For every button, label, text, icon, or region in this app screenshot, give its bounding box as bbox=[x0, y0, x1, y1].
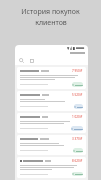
button[interactable]: Фильтр bbox=[28, 57, 35, 64]
button[interactable]: 8 620 ₽ bbox=[17, 157, 86, 178]
button[interactable]: 1 020 ₽ bbox=[17, 113, 86, 133]
button[interactable]: Действие bbox=[74, 104, 83, 109]
button[interactable]: Действие bbox=[72, 82, 83, 87]
button[interactable]: Действие bbox=[72, 172, 83, 176]
button[interactable]: Действие bbox=[73, 148, 83, 153]
button[interactable]: 7 950 ₽ bbox=[17, 67, 86, 89]
staticText: История покупок bbox=[21, 7, 80, 17]
button[interactable]: 5 520 ₽ bbox=[17, 91, 86, 111]
button[interactable]: Поиск bbox=[18, 57, 25, 64]
button[interactable]: 3 370 ₽ bbox=[17, 135, 86, 155]
button[interactable]: Действие bbox=[71, 126, 83, 131]
staticText: клиентов bbox=[35, 18, 67, 28]
staticText: 7 950 ₽ bbox=[72, 69, 83, 73]
staticText: 5 520 ₽ bbox=[72, 93, 83, 97]
staticText: 1 020 ₽ bbox=[72, 115, 83, 119]
staticText: 3 370 ₽ bbox=[72, 137, 83, 141]
staticText: 8 620 ₽ bbox=[72, 159, 83, 163]
